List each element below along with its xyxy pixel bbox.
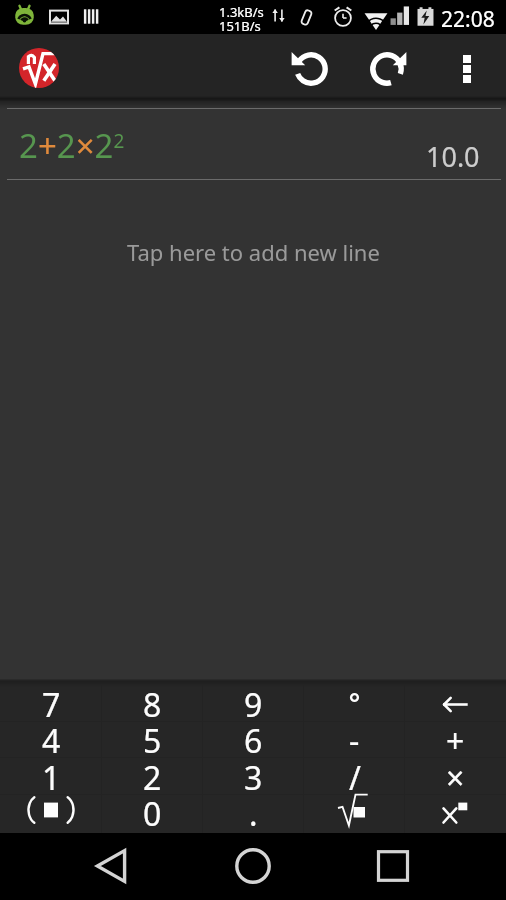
staticText: 6 <box>244 719 263 755</box>
button[interactable]: Recents <box>363 836 423 896</box>
button[interactable]: 9 <box>203 683 304 719</box>
button[interactable]: / <box>304 756 405 792</box>
button[interactable]: 2+2×22 <box>0 109 506 179</box>
staticText: 9 <box>244 683 263 719</box>
button[interactable]: × <box>405 756 506 792</box>
button[interactable]: Backspace <box>405 683 506 719</box>
button[interactable]: . <box>203 792 304 828</box>
button[interactable]: 1 <box>0 756 102 792</box>
button[interactable]: Square root <box>304 792 405 828</box>
button[interactable]: 0 <box>102 792 203 828</box>
staticText: 1.3kB/s <box>219 3 264 21</box>
button[interactable]: Tap here to add new line <box>0 197 506 307</box>
button[interactable]: Undo <box>287 45 335 93</box>
button[interactable]: 5 <box>102 719 203 755</box>
button[interactable]: 2 <box>102 756 203 792</box>
button[interactable]: Redo <box>363 45 411 93</box>
staticText: 2 <box>143 756 162 792</box>
staticText: Tap here to add new line <box>127 237 380 267</box>
staticText: 1 <box>42 756 61 792</box>
staticText: 151B/s <box>219 17 261 35</box>
button[interactable]: Degree <box>304 683 405 719</box>
staticText: 7 <box>42 683 61 719</box>
button[interactable]: 8 <box>102 683 203 719</box>
button[interactable]: 3 <box>203 756 304 792</box>
staticText: × <box>446 756 465 792</box>
staticText: / <box>349 756 361 792</box>
staticText: - <box>349 719 360 755</box>
staticText: 3 <box>244 756 263 792</box>
staticText: 8 <box>143 683 162 719</box>
staticText: 5 <box>143 719 162 755</box>
button[interactable]: 4 <box>0 719 102 755</box>
button[interactable]: - <box>304 719 405 755</box>
button[interactable]: Home <box>223 836 283 896</box>
staticText: 0 <box>143 792 162 828</box>
staticText: + <box>446 719 465 755</box>
button[interactable]: App icon <box>19 48 59 88</box>
staticText: 10.0 <box>426 138 480 175</box>
button[interactable]: More options <box>443 45 491 93</box>
button[interactable]: 7 <box>0 683 102 719</box>
staticText: 2+2×22 <box>19 123 125 168</box>
staticText: 22:08 <box>441 5 495 34</box>
staticText: 4 <box>42 719 61 755</box>
button[interactable]: 6 <box>203 719 304 755</box>
button[interactable]: Power <box>405 792 506 828</box>
button[interactable]: + <box>405 719 506 755</box>
staticText: . <box>249 792 258 828</box>
button[interactable]: Back <box>81 836 141 896</box>
button[interactable]: Parentheses <box>0 792 102 828</box>
